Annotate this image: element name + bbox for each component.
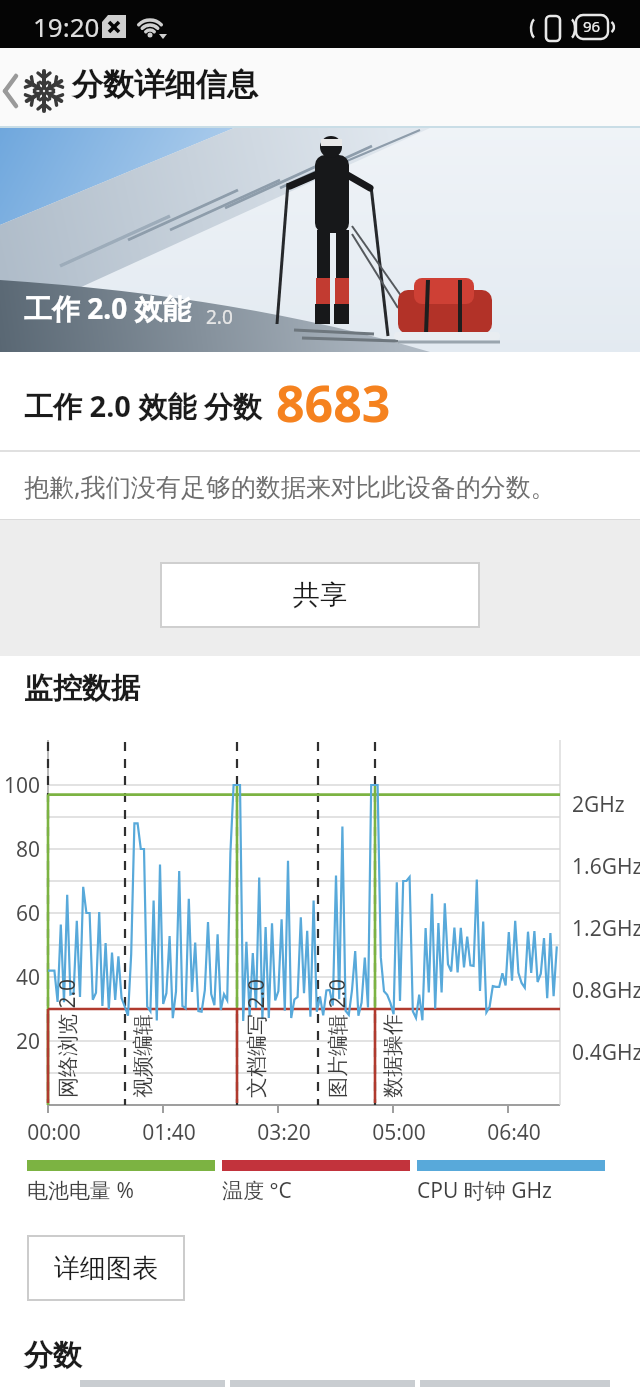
button[interactable] xyxy=(0,48,640,126)
staticText: 温度 °C xyxy=(222,1176,292,1205)
button[interactable]: 详细图表 xyxy=(27,1235,185,1301)
staticText: 分数详细信息 xyxy=(72,65,258,104)
staticText: 共享 xyxy=(293,578,347,612)
staticText: 20 xyxy=(0,1027,40,1056)
staticText: 01:40 xyxy=(142,1118,196,1147)
staticText: 电池电量 % xyxy=(27,1176,134,1205)
staticText: 监控数据 xyxy=(24,670,140,707)
staticText: 06:40 xyxy=(487,1118,541,1147)
staticText: 1.2GHz xyxy=(572,914,640,943)
staticText: 1.6GHz xyxy=(572,852,640,881)
staticText: 工作 2.0 效能 分数 xyxy=(24,386,262,426)
staticText: 60 xyxy=(0,899,40,928)
staticText: 视频编辑 xyxy=(130,1014,156,1098)
staticText: 00:00 xyxy=(27,1118,81,1147)
staticText: 文档编写 2.0 xyxy=(242,978,271,1098)
staticText: 抱歉,我们没有足够的数据来对比此设备的分数。 xyxy=(24,469,556,503)
staticText: 分数 xyxy=(24,1337,82,1374)
staticText: 96 xyxy=(583,16,601,36)
staticText: 工作 2.0 效能 xyxy=(24,289,191,327)
staticText: 8683 xyxy=(276,369,391,437)
staticText: 05:00 xyxy=(372,1118,426,1147)
staticText: 2.0 xyxy=(206,304,233,330)
staticText: CPU 时钟 GHz xyxy=(417,1176,552,1205)
staticText: 0.4GHz xyxy=(572,1038,640,1067)
button[interactable]: 共享 xyxy=(160,562,480,628)
staticText: 40 xyxy=(0,963,40,992)
staticText: 03:20 xyxy=(257,1118,311,1147)
staticText: 100 xyxy=(0,771,40,800)
staticText: 详细图表 xyxy=(54,1252,158,1285)
staticText: 0.8GHz xyxy=(572,976,640,1005)
staticText: 网络浏览 2.0 xyxy=(53,978,82,1098)
staticText: 图片编辑 2.0 xyxy=(323,978,352,1098)
staticText: 19:20 xyxy=(33,9,100,44)
staticText: 2GHz xyxy=(572,790,625,819)
staticText: 数据操作 xyxy=(380,1014,406,1098)
staticText: 80 xyxy=(0,835,40,864)
